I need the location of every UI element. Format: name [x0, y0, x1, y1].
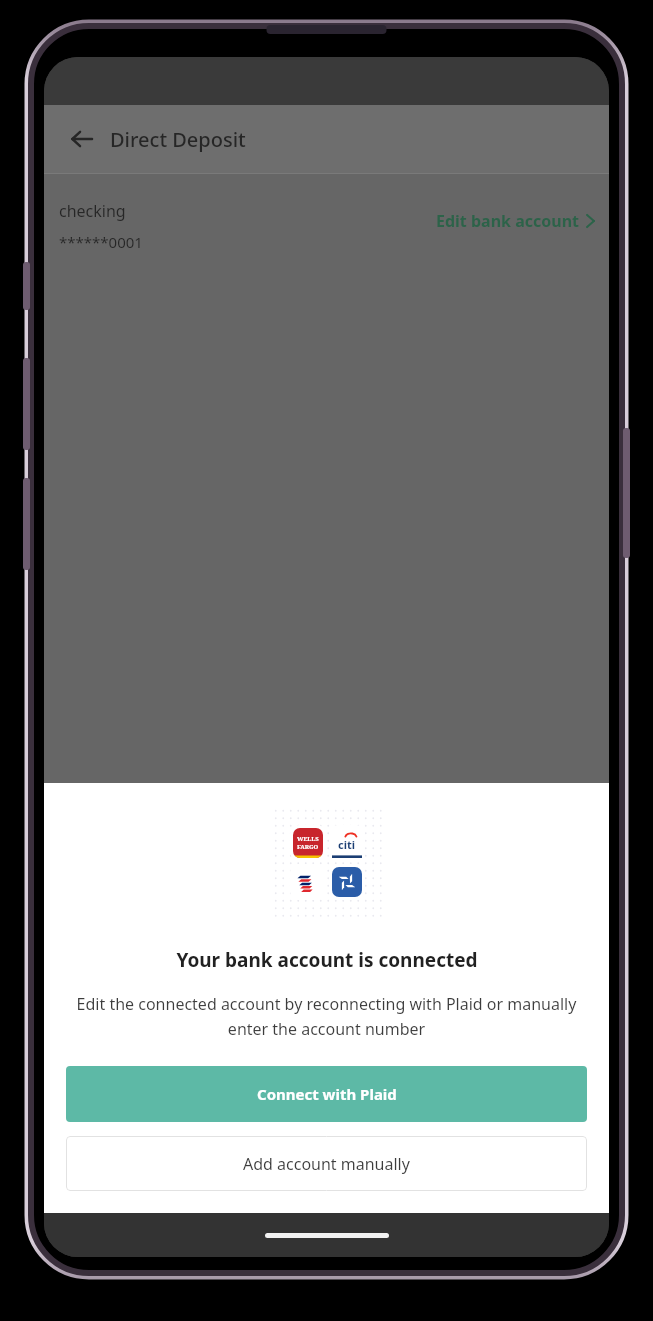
staticText: Add account manually	[243, 1153, 410, 1175]
button[interactable]: Connect with Plaid	[66, 1066, 587, 1122]
staticText: WELLS	[297, 835, 319, 843]
staticText: Your bank account is connected	[176, 947, 478, 973]
staticText: Edit the connected account by reconnecti…	[68, 993, 585, 1039]
staticText: FARGO	[297, 843, 319, 851]
button[interactable]: checking	[59, 200, 595, 252]
button[interactable]: Add account manually	[66, 1136, 587, 1191]
staticText: checking	[59, 200, 126, 222]
staticText: Edit bank account	[436, 210, 579, 232]
button[interactable]: Back	[58, 115, 106, 163]
staticText: ******0001	[59, 232, 143, 252]
staticText: Direct Deposit	[110, 126, 246, 153]
staticText: Connect with Plaid	[257, 1084, 397, 1104]
staticText: citi	[338, 837, 356, 852]
